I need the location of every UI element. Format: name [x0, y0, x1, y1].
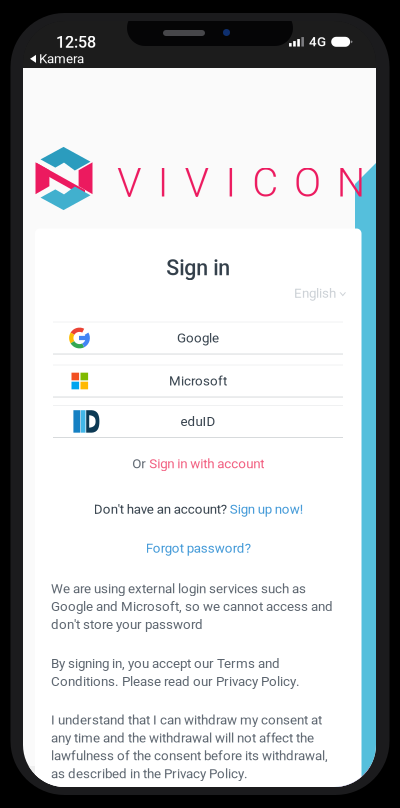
- button[interactable]: Forgot password?: [146, 540, 251, 556]
- staticText: eduID: [180, 414, 215, 429]
- staticText: Sign in: [166, 255, 230, 280]
- staticText: Google: [177, 330, 219, 346]
- button[interactable]: Sign in with account: [149, 456, 264, 472]
- staticText: Forgot password?: [146, 540, 251, 556]
- staticText: I understand that I can withdraw my cons…: [51, 712, 328, 781]
- staticText: 4G: [309, 34, 326, 50]
- button[interactable]: eduID: [53, 405, 343, 438]
- staticText: 12:58: [56, 33, 96, 52]
- staticText: Don't have an account?: [94, 501, 230, 517]
- staticText: Kamera: [39, 51, 84, 67]
- button[interactable]: Google: [53, 321, 343, 354]
- staticText: VIVICON: [117, 159, 365, 206]
- button[interactable]: Kamera: [30, 51, 84, 67]
- staticText: English: [294, 285, 336, 301]
- staticText: Microsoft: [169, 373, 227, 389]
- staticText: Sign up now!: [230, 501, 303, 517]
- button[interactable]: English: [294, 285, 346, 301]
- button[interactable]: Microsoft: [53, 364, 343, 397]
- button[interactable]: Sign up now!: [230, 501, 303, 517]
- staticText: By signing in, you accept our Terms and …: [51, 656, 300, 689]
- staticText: Sign in with account: [149, 456, 264, 472]
- staticText: Or: [132, 456, 149, 472]
- staticText: We are using external login services suc…: [51, 581, 333, 632]
